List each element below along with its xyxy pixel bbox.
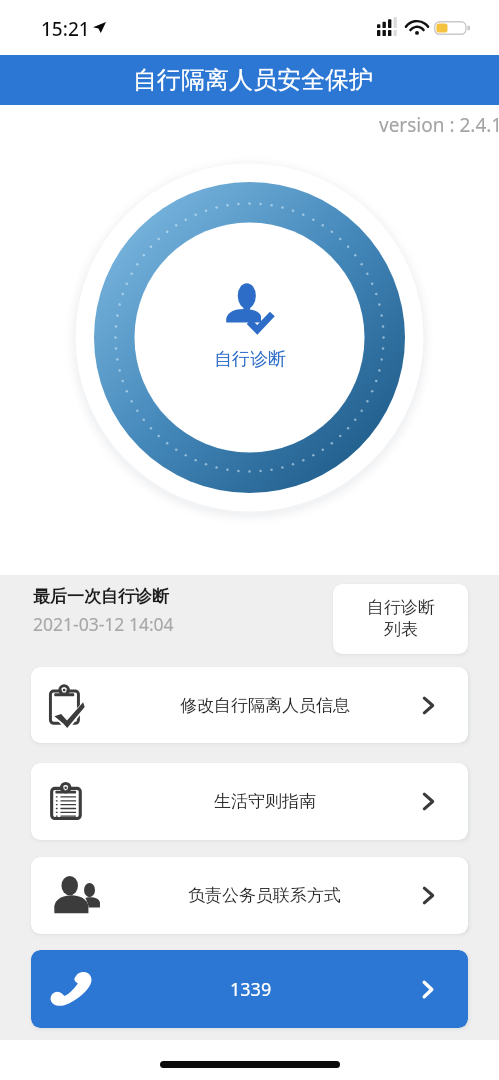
- button[interactable]: 负责公务员联系方式: [31, 857, 468, 934]
- staticText: 自行隔离人员安全保护: [133, 65, 373, 95]
- staticText: 15:21: [41, 16, 90, 42]
- staticText: 2021-03-12 14:04: [33, 612, 174, 636]
- staticText: 负责公务员联系方式: [188, 885, 341, 906]
- staticText: 自行诊断 列表: [367, 597, 435, 640]
- button[interactable]: 自行诊断: [67, 155, 432, 520]
- button[interactable]: 生活守则指南: [31, 763, 468, 840]
- staticText: 生活守则指南: [214, 791, 316, 812]
- staticText: 最后一次自行诊断: [33, 586, 169, 607]
- staticText: 1339: [230, 977, 272, 1002]
- button[interactable]: 1339: [31, 950, 468, 1028]
- button[interactable]: 自行诊断 列表: [333, 584, 468, 654]
- staticText: 自行诊断: [214, 348, 286, 371]
- staticText: 修改自行隔离人员信息: [180, 695, 350, 716]
- staticText: version : 2.4.1: [379, 112, 499, 138]
- button[interactable]: 修改自行隔离人员信息: [31, 667, 468, 743]
